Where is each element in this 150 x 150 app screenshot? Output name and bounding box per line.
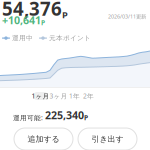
button[interactable]: 3ヶ月 — [51, 92, 66, 100]
button[interactable]: 2年 — [83, 92, 94, 100]
staticText: 2年 — [83, 92, 94, 100]
staticText: 1年 — [69, 92, 80, 100]
staticText: 1ヶ月 — [31, 92, 49, 100]
staticText: 運用可能: — [13, 113, 43, 122]
staticText: +10,641 — [2, 13, 41, 27]
staticText: 3ヶ月 — [49, 92, 67, 100]
staticText: P — [41, 18, 45, 27]
staticText: 引き出す — [91, 134, 123, 144]
staticText: P — [62, 8, 68, 21]
button[interactable]: 引き出す — [78, 128, 137, 150]
button[interactable]: 1ヶ月 — [33, 92, 48, 100]
button[interactable]: 追加する — [14, 128, 73, 150]
staticText: 追加する — [27, 134, 59, 144]
staticText: P — [84, 113, 88, 122]
staticText: 運用中 — [12, 34, 33, 42]
staticText: 2026/03/11更新 — [108, 13, 146, 20]
staticText: 225,340 — [45, 108, 84, 122]
button[interactable]: 1年 — [69, 92, 80, 100]
staticText: 元本ポイント — [49, 34, 91, 42]
staticText: 54,376 — [2, 0, 62, 21]
